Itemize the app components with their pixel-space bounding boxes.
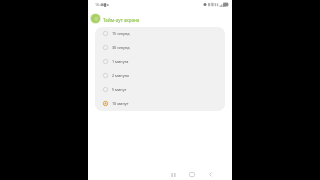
staticText: 15 секунд [112, 31, 130, 36]
button[interactable]: 10 минут [95, 96, 225, 110]
staticText: Тайм-аут экрана [103, 17, 140, 23]
staticText: 5 минут [112, 87, 127, 92]
staticText: 10 минут [112, 101, 129, 106]
button[interactable]: Home [185, 168, 198, 180]
button[interactable]: 5 минут [95, 82, 225, 96]
button[interactable]: Back [204, 168, 217, 180]
button[interactable]: 15 секунд [95, 27, 225, 40]
button[interactable]: 2 минуты [95, 68, 225, 82]
button[interactable]: 30 секунд [95, 40, 225, 54]
staticText: 16:41 [95, 2, 104, 7]
button[interactable]: 1 минута [95, 54, 225, 68]
staticText: 30 секунд [112, 45, 130, 50]
staticText: 2 минуты [112, 73, 130, 78]
staticText: 1 минута [112, 59, 129, 64]
button[interactable]: Recent apps [166, 168, 179, 180]
